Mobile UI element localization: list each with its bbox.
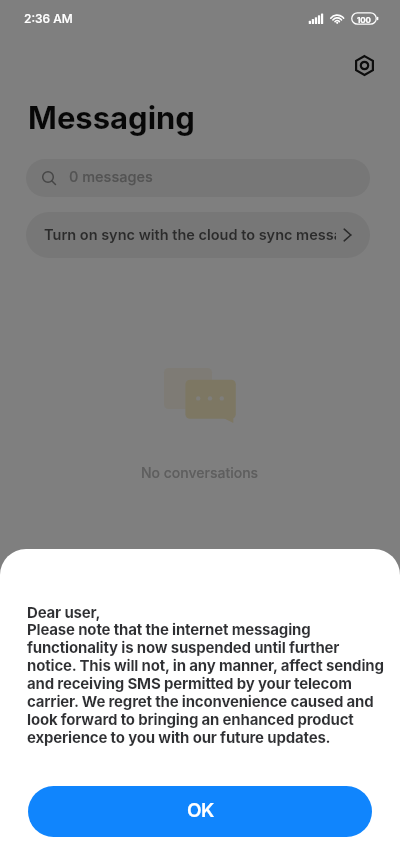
- staticText: No conversations: [141, 464, 259, 481]
- staticText: Turn on sync with the cloud to sync mess…: [44, 226, 336, 244]
- button[interactable]: Turn on sync with the cloud to sync mess…: [26, 212, 370, 258]
- button[interactable]: OK: [28, 786, 372, 837]
- staticText: 100: [357, 15, 371, 25]
- staticText: 2:36 AM: [24, 11, 73, 26]
- button[interactable]: 0 messages: [26, 159, 370, 197]
- button[interactable]: Settings: [348, 49, 380, 81]
- staticText: Messaging: [28, 99, 195, 137]
- staticText: 0 messages: [69, 168, 153, 186]
- staticText: Dear user, Please note that the internet…: [27, 603, 384, 747]
- staticText: OK: [187, 799, 214, 822]
